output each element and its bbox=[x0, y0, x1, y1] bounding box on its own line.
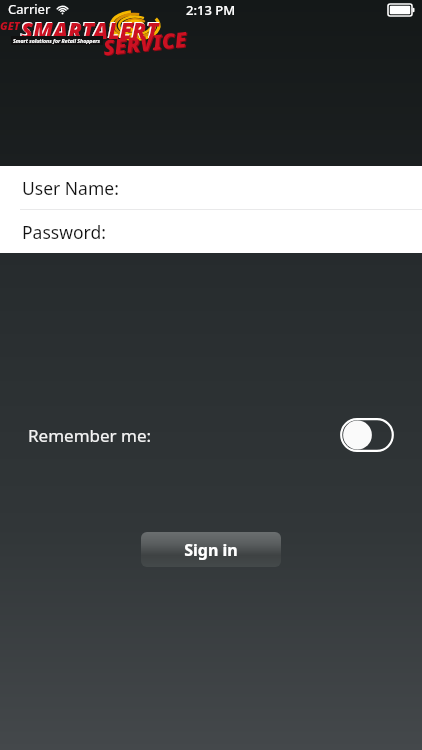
staticText: GET bbox=[0, 18, 20, 33]
staticText: SMARTALERT bbox=[21, 15, 159, 45]
staticText: SERVICE bbox=[102, 25, 188, 62]
staticText: Password: bbox=[22, 220, 106, 244]
button[interactable]: Password: bbox=[0, 210, 422, 253]
staticText: User Name: bbox=[22, 176, 119, 200]
staticText: 2:13 PM bbox=[186, 1, 236, 19]
staticText: SERVICE bbox=[103, 26, 189, 63]
staticText: Remember me: bbox=[28, 424, 152, 447]
button[interactable]: Remember me toggle bbox=[340, 418, 394, 452]
staticText: Sign in bbox=[184, 539, 238, 561]
other: Battery bbox=[388, 4, 415, 16]
button[interactable]: Sign in bbox=[141, 532, 281, 567]
staticText: Carrier bbox=[8, 0, 51, 18]
button[interactable]: User Name: bbox=[0, 166, 422, 209]
staticText: Smart solutions for Retail Shoppers bbox=[13, 37, 100, 44]
staticText: SMARTALERT bbox=[20, 14, 158, 44]
button[interactable]: Remember me: bbox=[28, 418, 394, 452]
